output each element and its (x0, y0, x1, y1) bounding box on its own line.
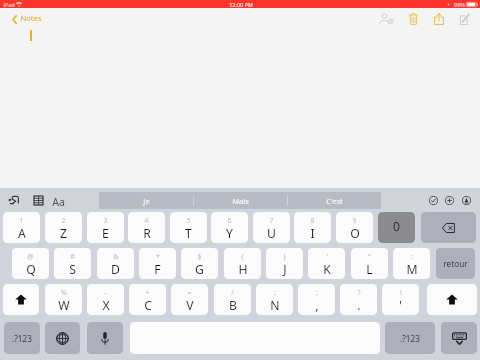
button[interactable]: 1 (3, 212, 40, 243)
button[interactable]: 9 (336, 212, 373, 243)
staticText: O (350, 225, 360, 242)
button[interactable]: Insert table (30, 192, 47, 209)
button[interactable]: Share (428, 8, 450, 30)
staticText: . (357, 297, 361, 314)
staticText: 6 (227, 216, 232, 226)
staticText: ; (316, 288, 318, 298)
staticText: % (61, 288, 67, 298)
button[interactable]: 4 (128, 212, 165, 243)
button[interactable]: ! (382, 284, 419, 315)
staticText: @ (27, 252, 34, 262)
button[interactable]: Add (441, 192, 457, 208)
staticText: R (143, 225, 151, 242)
button[interactable]: Mais (193, 192, 287, 209)
staticText: 9 (352, 216, 357, 226)
staticText: X (102, 297, 110, 314)
button[interactable]: Notes (12, 9, 42, 29)
staticText: S (69, 261, 76, 278)
staticText: * (156, 252, 160, 262)
staticText: 7 (269, 216, 274, 226)
button[interactable]: ; (298, 284, 335, 315)
button[interactable]: 2 (45, 212, 82, 243)
button[interactable]: - (87, 284, 124, 315)
button[interactable]: / (214, 284, 251, 315)
staticText: Notes (20, 13, 42, 23)
button[interactable]: # (54, 248, 91, 279)
staticText: Aa (52, 195, 65, 209)
staticText: N (270, 297, 280, 314)
staticText: + (145, 288, 150, 298)
staticText: .?123 (12, 333, 32, 344)
button[interactable]: ) (266, 248, 303, 279)
button[interactable]: 3 (87, 212, 124, 243)
staticText: B (229, 297, 237, 314)
button[interactable]: Je (99, 192, 193, 209)
button[interactable]: Change language (45, 322, 80, 354)
button[interactable]: Add People (375, 8, 397, 30)
staticText: / (231, 288, 234, 298)
staticText: iPad (3, 1, 15, 8)
staticText: ) (283, 252, 286, 262)
button[interactable]: ? (340, 284, 377, 315)
button[interactable]: : (393, 248, 430, 279)
staticText: 99% (454, 1, 465, 8)
button[interactable]: & (97, 248, 134, 279)
button[interactable]: 7 (253, 212, 290, 243)
button[interactable]: 6 (211, 212, 248, 243)
button[interactable]: + (129, 284, 166, 315)
staticText: V (186, 297, 194, 314)
button[interactable]: ‘ (308, 248, 345, 279)
button[interactable]: retour (436, 248, 475, 279)
button[interactable]: Backspace (421, 212, 476, 243)
button[interactable]: Compose (454, 8, 476, 30)
staticText: 0 (393, 218, 400, 235)
staticText: G (195, 261, 204, 278)
button[interactable]: Done (425, 192, 441, 208)
staticText: ? (357, 288, 361, 298)
staticText: F (154, 261, 161, 278)
button[interactable]: 0 (378, 212, 415, 243)
staticText: Je (143, 196, 150, 206)
staticText: J (283, 261, 287, 278)
staticText: ; (274, 288, 276, 298)
staticText: Z (60, 225, 67, 242)
button[interactable]: * (139, 248, 176, 279)
staticText: ( (241, 252, 244, 262)
button[interactable]: C'est (287, 192, 381, 209)
staticText: 12:00 PM (229, 1, 253, 8)
button[interactable]: .?123 (385, 322, 435, 354)
button[interactable]: Shift (3, 284, 39, 315)
staticText: Q (26, 261, 36, 278)
button[interactable]: Dictate (87, 322, 123, 354)
button[interactable]: Delete (402, 8, 424, 30)
staticText: 1 (19, 216, 24, 226)
staticText: = (187, 288, 192, 298)
button[interactable]: ( (224, 248, 261, 279)
staticText: Y (226, 225, 233, 242)
staticText: M (406, 261, 418, 278)
staticText: A (18, 225, 26, 242)
button[interactable]: = (171, 284, 208, 315)
button[interactable]: Shift (427, 284, 477, 315)
staticText: 8 (310, 216, 315, 226)
button[interactable]: Hide keyboard (441, 322, 477, 354)
staticText: T (185, 225, 192, 242)
button[interactable]: Undo (5, 191, 23, 209)
button[interactable]: Markup (458, 192, 474, 208)
staticText: C'est (326, 196, 343, 206)
button[interactable]: $ (181, 248, 218, 279)
button[interactable]: 5 (170, 212, 207, 243)
button[interactable]: 8 (294, 212, 331, 243)
button[interactable]: " (351, 248, 388, 279)
button[interactable]: ; (256, 284, 293, 315)
staticText: , (315, 297, 319, 314)
button[interactable]: % (45, 284, 82, 315)
button[interactable]: Aa (50, 192, 66, 212)
staticText: H (238, 261, 248, 278)
staticText: 5 (186, 216, 191, 226)
staticText: K (323, 261, 331, 278)
button[interactable]: .?123 (4, 322, 40, 354)
staticText: $ (197, 252, 202, 262)
button[interactable]: @ (12, 248, 49, 279)
